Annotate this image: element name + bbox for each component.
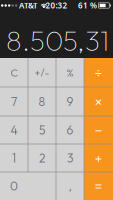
- button[interactable]: 4: [0, 116, 28, 144]
- staticText: 5: [39, 122, 45, 137]
- staticText: 7: [11, 94, 17, 109]
- button[interactable]: +: [84, 144, 113, 172]
- button[interactable]: +/-: [28, 58, 56, 87]
- staticText: 61 %: [78, 0, 97, 11]
- staticText: 8.505,31: [6, 23, 109, 58]
- button[interactable]: C: [0, 58, 28, 87]
- staticText: ×: [94, 92, 102, 111]
- button[interactable]: =: [84, 172, 113, 200]
- staticText: 2: [39, 150, 45, 165]
- button[interactable]: 5: [28, 116, 56, 144]
- staticText: 20:32: [45, 0, 67, 11]
- button[interactable]: %: [56, 58, 84, 87]
- button[interactable]: ,: [56, 172, 84, 200]
- button[interactable]: 2: [28, 144, 56, 172]
- staticText: 4: [10, 122, 17, 137]
- button[interactable]: 7: [0, 87, 28, 116]
- staticText: +: [94, 149, 102, 167]
- staticText: 8: [38, 94, 45, 109]
- staticText: 9: [66, 94, 73, 109]
- button[interactable]: 6: [56, 116, 84, 144]
- staticText: 6: [66, 122, 73, 137]
- button[interactable]: ×: [84, 87, 113, 116]
- staticText: +/-: [34, 66, 49, 79]
- staticText: 1: [12, 150, 16, 165]
- staticText: AT&T: [19, 0, 38, 11]
- button[interactable]: 8: [28, 87, 56, 116]
- button[interactable]: 0: [0, 172, 56, 200]
- staticText: ÷: [94, 63, 102, 82]
- button[interactable]: 3: [56, 144, 84, 172]
- button[interactable]: 9: [56, 87, 84, 116]
- staticText: ,: [68, 178, 71, 193]
- staticText: C: [10, 66, 17, 79]
- staticText: %: [66, 66, 73, 79]
- staticText: −: [94, 121, 102, 139]
- staticText: 3: [67, 150, 73, 165]
- staticText: =: [94, 177, 102, 195]
- button[interactable]: −: [84, 116, 113, 144]
- button[interactable]: ÷: [84, 58, 113, 87]
- staticText: 0: [10, 178, 18, 193]
- button[interactable]: 1: [0, 144, 28, 172]
